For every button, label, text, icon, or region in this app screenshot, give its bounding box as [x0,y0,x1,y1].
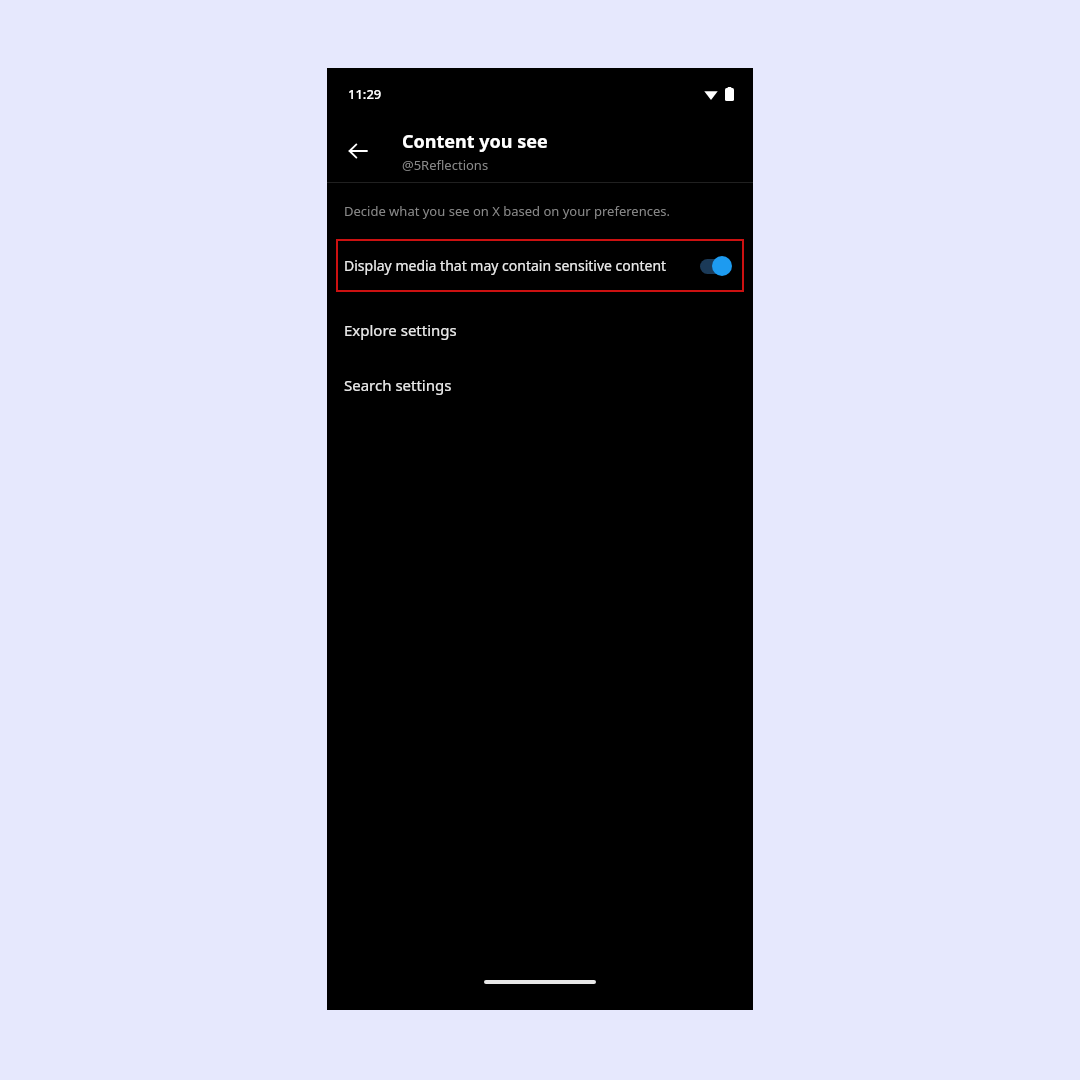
staticText: Display media that may contain sensitive… [344,256,686,275]
staticText: Decide what you see on X based on your p… [344,202,670,220]
button[interactable]: Search settings [327,357,753,412]
button[interactable]: Display media that may contain sensitive… [336,239,744,292]
staticText: Explore settings [344,320,457,340]
button[interactable]: Back [340,133,376,169]
staticText: @5Reflections [402,156,489,174]
staticText: Content you see [402,129,548,154]
button[interactable]: Explore settings [327,302,753,357]
staticText: Search settings [344,375,452,395]
staticText: 11:29 [348,85,382,103]
